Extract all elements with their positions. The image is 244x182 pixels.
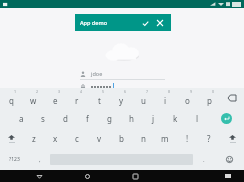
staticText: 8 <box>168 89 171 94</box>
staticText: f <box>86 113 89 124</box>
staticText: App demo <box>80 19 107 26</box>
button[interactable]: c <box>66 128 88 149</box>
staticText: h <box>129 113 134 124</box>
button[interactable]: z <box>23 128 44 149</box>
button[interactable]: Close <box>154 17 166 29</box>
button[interactable]: Home <box>73 170 102 182</box>
button[interactable]: v <box>88 128 110 149</box>
button[interactable]: ? <box>198 128 220 149</box>
staticText: 9 <box>190 89 193 94</box>
staticText: u <box>141 95 146 106</box>
button[interactable]: a <box>11 108 32 128</box>
button[interactable]: Shift <box>220 128 244 149</box>
staticText: a <box>19 113 24 124</box>
staticText: jdoe <box>91 70 103 77</box>
staticText: m <box>161 133 169 144</box>
staticText: p <box>207 95 212 106</box>
staticText: ? <box>207 133 211 144</box>
staticText: t <box>98 95 101 106</box>
button[interactable]: jdoe <box>80 69 165 78</box>
staticText: 0 <box>212 89 215 94</box>
button[interactable]: 2 <box>22 88 44 108</box>
button[interactable]: 6 <box>110 88 132 108</box>
button[interactable]: 0 <box>198 88 220 108</box>
button[interactable]: Shift <box>0 128 23 149</box>
staticText: e <box>53 95 58 106</box>
staticText: l <box>196 113 199 124</box>
button[interactable]: Confirm <box>139 17 151 29</box>
staticText: z <box>32 133 36 144</box>
button[interactable]: Backspace <box>220 88 244 108</box>
staticText: y <box>119 95 124 106</box>
button[interactable]: Keyboard <box>213 170 242 182</box>
button[interactable]: Recent apps <box>121 170 150 182</box>
button[interactable]: Emoji <box>214 149 244 170</box>
button[interactable]: 7 <box>132 88 154 108</box>
staticText: i <box>164 95 167 106</box>
button[interactable]: Enter <box>208 108 244 128</box>
button[interactable]: 3 <box>44 88 66 108</box>
staticText: w <box>30 95 37 106</box>
staticText: k <box>173 113 178 124</box>
staticText: v <box>97 133 102 144</box>
staticText: 6 <box>124 89 127 94</box>
staticText: r <box>75 95 79 106</box>
button[interactable]: 8 <box>154 88 176 108</box>
button[interactable] <box>80 82 165 91</box>
button[interactable]: s <box>32 108 54 128</box>
button[interactable]: m <box>154 128 176 149</box>
staticText: ! <box>186 133 189 144</box>
staticText: 1 <box>14 89 17 94</box>
staticText: 2 <box>36 89 39 94</box>
button[interactable]: ! <box>176 128 198 149</box>
staticText: n <box>141 133 146 144</box>
button[interactable]: g <box>98 108 120 128</box>
button[interactable]: h <box>120 108 142 128</box>
button[interactable]: f <box>76 108 98 128</box>
staticText: 3 <box>58 89 61 94</box>
staticText: o <box>185 95 190 106</box>
button[interactable]: j <box>142 108 164 128</box>
staticText: g <box>107 113 112 124</box>
button[interactable]: 9 <box>176 88 198 108</box>
staticText: b <box>119 133 124 144</box>
button[interactable]: Comma <box>29 149 50 170</box>
staticText: 5 <box>102 89 105 94</box>
button[interactable]: x <box>44 128 66 149</box>
staticText: , <box>39 156 41 164</box>
staticText: s <box>41 113 45 124</box>
button[interactable]: 1 <box>0 88 22 108</box>
staticText: c <box>75 133 79 144</box>
staticText: d <box>63 113 68 124</box>
button[interactable]: Back <box>25 170 54 182</box>
button[interactable]: d <box>54 108 76 128</box>
button[interactable]: b <box>110 128 132 149</box>
button[interactable]: l <box>186 108 208 128</box>
button[interactable]: ?123 <box>0 149 29 170</box>
staticText: x <box>53 133 58 144</box>
button[interactable]: 4 <box>66 88 88 108</box>
button[interactable]: k <box>164 108 186 128</box>
staticText: j <box>152 113 155 124</box>
staticText: . <box>203 156 205 164</box>
staticText: 7 <box>146 89 149 94</box>
staticText: ?123 <box>9 156 20 163</box>
button[interactable]: 5 <box>88 88 110 108</box>
button[interactable]: n <box>132 128 154 149</box>
staticText: 4 <box>80 89 83 94</box>
staticText: q <box>9 95 14 106</box>
